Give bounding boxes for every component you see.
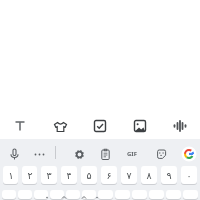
button[interactable] xyxy=(82,190,96,200)
button[interactable] xyxy=(73,141,86,167)
staticText: ۱ xyxy=(8,170,14,181)
staticText: ۶ xyxy=(106,170,112,181)
staticText: ۲ xyxy=(27,170,33,181)
button[interactable] xyxy=(149,190,164,200)
button[interactable]: ۶ xyxy=(101,166,117,185)
button[interactable]: ۹ xyxy=(161,166,177,185)
button[interactable] xyxy=(98,190,113,200)
button[interactable] xyxy=(18,190,32,200)
button[interactable] xyxy=(155,141,168,167)
button[interactable] xyxy=(33,141,46,167)
button[interactable]: GIF xyxy=(125,141,138,167)
staticText: ۳ xyxy=(46,170,52,181)
button[interactable] xyxy=(120,112,160,140)
button[interactable]: ۱ xyxy=(3,166,18,185)
button[interactable]: ۲ xyxy=(22,166,37,185)
button[interactable] xyxy=(160,112,200,140)
button[interactable] xyxy=(8,141,21,167)
button[interactable] xyxy=(181,141,194,167)
button[interactable] xyxy=(2,190,16,200)
button[interactable] xyxy=(183,190,198,200)
button[interactable]: ۸ xyxy=(141,166,157,185)
staticText: ۴ xyxy=(66,170,72,181)
staticText: ۰ xyxy=(186,170,192,181)
staticText: ۵ xyxy=(86,170,92,181)
button[interactable] xyxy=(0,112,40,140)
button[interactable] xyxy=(66,190,80,200)
button[interactable]: ۵ xyxy=(81,166,97,185)
button[interactable] xyxy=(80,112,120,140)
button[interactable] xyxy=(99,141,112,167)
button[interactable]: ۰ xyxy=(181,166,197,185)
staticText: ۹ xyxy=(166,170,172,181)
button[interactable] xyxy=(34,190,48,200)
button[interactable] xyxy=(50,190,64,200)
button[interactable] xyxy=(40,112,80,140)
button[interactable] xyxy=(115,190,130,200)
button[interactable]: ۳ xyxy=(41,166,57,185)
button[interactable] xyxy=(166,190,181,200)
staticText: GIF xyxy=(127,150,137,158)
staticText: ۷ xyxy=(126,170,132,181)
staticText: ۸ xyxy=(146,170,152,181)
button[interactable]: ۴ xyxy=(61,166,77,185)
button[interactable]: ۷ xyxy=(121,166,137,185)
button[interactable] xyxy=(132,190,147,200)
